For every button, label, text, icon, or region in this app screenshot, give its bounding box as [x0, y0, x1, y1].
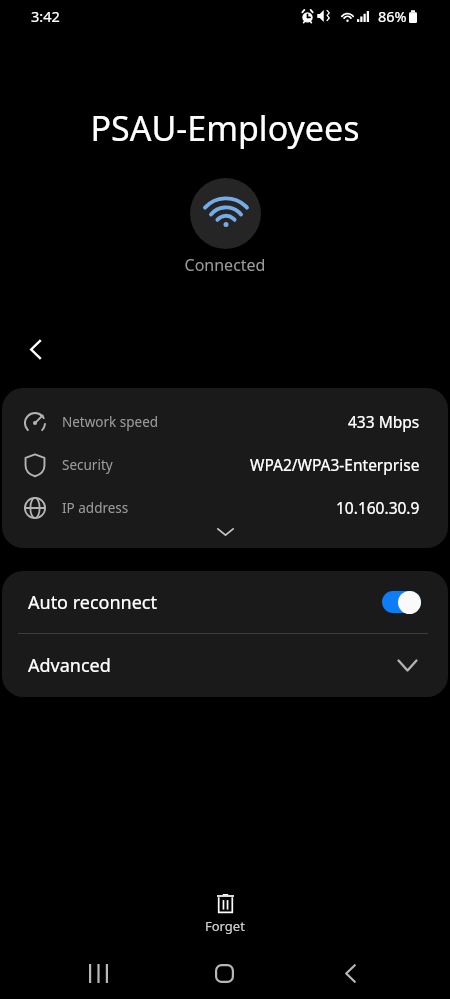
button[interactable]: Back [324, 947, 376, 999]
button[interactable]: Recents [72, 947, 124, 999]
staticText: Advanced [28, 653, 111, 678]
staticText: Forget [205, 917, 245, 935]
button[interactable]: Back [13, 326, 59, 372]
button[interactable]: Wi-Fi connected [190, 178, 261, 249]
staticText: Network speed [62, 413, 159, 431]
staticText: IP address [62, 499, 129, 517]
staticText: Connected [0, 254, 450, 276]
staticText: Security [62, 456, 113, 474]
staticText: 86% [378, 6, 407, 26]
button[interactable]: Forget [177, 882, 273, 947]
staticText: 433 Mbps [348, 411, 420, 432]
staticText: PSAU-Employees [0, 105, 450, 151]
staticText: 10.160.30.9 [336, 497, 420, 518]
button[interactable]: Home [198, 947, 250, 999]
button[interactable]: Advanced [2, 634, 448, 697]
button[interactable]: Auto reconnect [2, 571, 448, 633]
staticText: Auto reconnect [28, 590, 157, 615]
staticText: 3:42 [31, 6, 60, 26]
staticText: WPA2/WPA3-Enterprise [250, 454, 420, 475]
button[interactable]: Show more [198, 520, 252, 544]
